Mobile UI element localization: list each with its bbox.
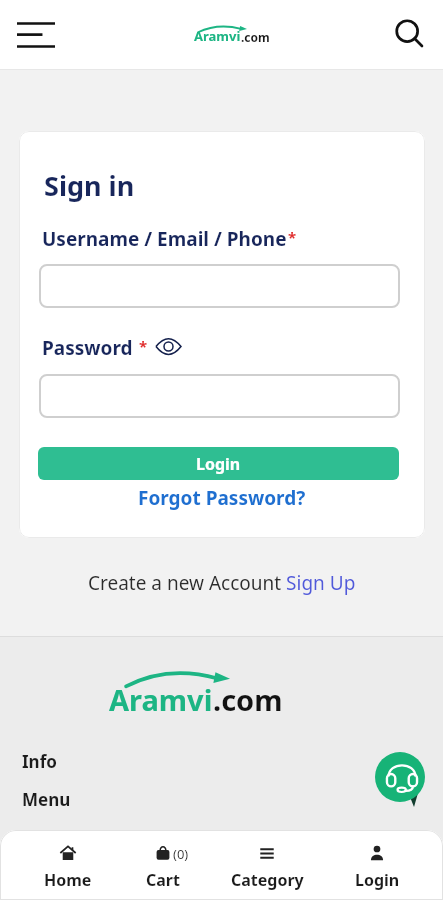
button[interactable]: [154, 335, 182, 357]
button[interactable]: (0): [113, 830, 213, 900]
button[interactable]: [375, 752, 425, 802]
button[interactable]: [39, 264, 400, 308]
button[interactable]: Home: [18, 830, 118, 900]
button[interactable]: Aramvi: [194, 14, 270, 45]
button[interactable]: [39, 374, 400, 418]
staticText: Username / Email / Phone: [42, 226, 287, 252]
staticText: *: [139, 336, 148, 356]
staticText: .com: [241, 29, 270, 45]
staticText: *: [288, 227, 297, 247]
button[interactable]: Category: [217, 830, 317, 900]
staticText: Password: [42, 335, 133, 361]
staticText: Cart: [146, 869, 180, 891]
button[interactable]: [387, 12, 431, 54]
staticText: Aramvi: [109, 680, 213, 719]
staticText: Category: [231, 869, 304, 891]
staticText: Login: [355, 869, 400, 891]
button[interactable]: Login: [38, 447, 399, 480]
staticText: Aramvi: [194, 27, 241, 45]
button[interactable]: [10, 13, 62, 57]
staticText: Create a new Account Sign Up: [88, 570, 356, 596]
button[interactable]: Info: [22, 750, 57, 773]
button[interactable]: Login: [327, 830, 427, 900]
staticText: .com: [213, 680, 283, 719]
button[interactable]: Menu: [22, 788, 71, 811]
staticText: (0): [173, 845, 189, 863]
staticText: Sign in: [44, 167, 135, 204]
button[interactable]: Create a new Account Sign Up: [0, 570, 443, 596]
staticText: Home: [44, 869, 92, 891]
staticText: Login: [196, 453, 241, 475]
button[interactable]: Forgot Password?: [138, 485, 306, 511]
